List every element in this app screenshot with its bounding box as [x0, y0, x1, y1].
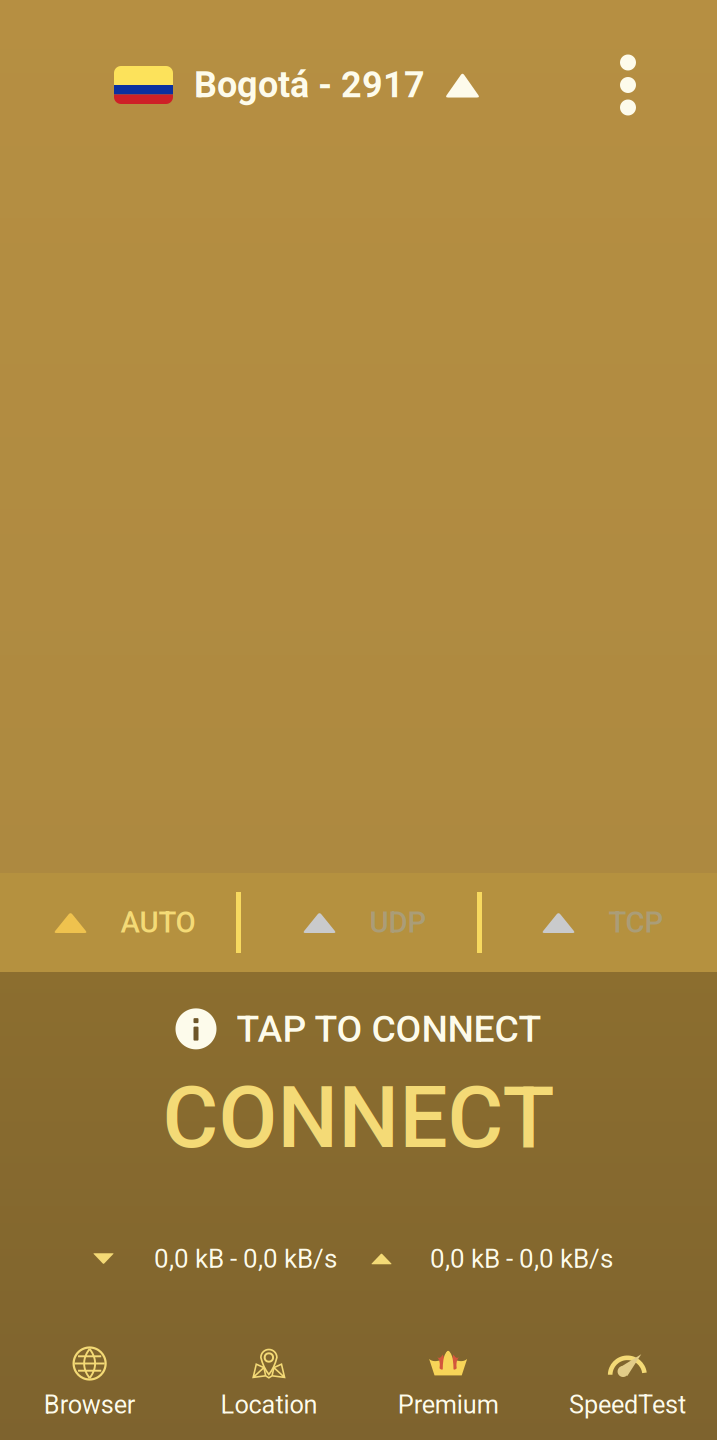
- staticText: CONNECT: [162, 1068, 554, 1168]
- button[interactable]: TAP TO CONNECT: [162, 1007, 554, 1168]
- button[interactable]: Premium: [358, 1340, 538, 1440]
- button[interactable]: More options: [588, 30, 668, 140]
- button[interactable]: AUTO: [0, 873, 239, 972]
- staticText: Premium: [398, 1390, 499, 1420]
- staticText: 0,0 kB - 0,0 kB/s: [430, 1243, 613, 1274]
- staticText: TCP: [608, 905, 663, 940]
- button[interactable]: Browser: [0, 1340, 179, 1440]
- button[interactable]: Bogotá - 2917: [114, 64, 480, 106]
- staticText: 0,0 kB - 0,0 kB/s: [154, 1243, 337, 1274]
- staticText: AUTO: [120, 905, 195, 940]
- staticText: SpeedTest: [569, 1390, 686, 1420]
- staticText: TAP TO CONNECT: [236, 1007, 541, 1051]
- staticText: UDP: [369, 905, 426, 940]
- button[interactable]: UDP: [239, 873, 478, 972]
- button[interactable]: TCP: [478, 873, 717, 972]
- staticText: Browser: [44, 1390, 136, 1420]
- button[interactable]: SpeedTest: [538, 1340, 717, 1440]
- staticText: Bogotá - 2917: [194, 64, 425, 106]
- staticText: Location: [220, 1390, 317, 1420]
- button[interactable]: Location: [179, 1340, 358, 1440]
